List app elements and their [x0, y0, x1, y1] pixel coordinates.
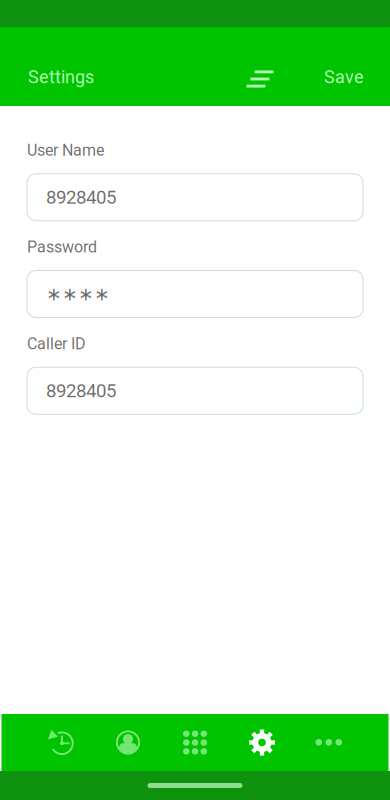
button[interactable]: 8928405 — [27, 367, 363, 414]
staticText: 8928405 — [46, 186, 116, 208]
button[interactable]: Sort — [237, 65, 283, 89]
staticText: Save — [324, 66, 364, 88]
staticText: ∗∗∗∗ — [46, 283, 110, 305]
staticText: Password — [27, 238, 97, 257]
staticText: Settings — [28, 66, 94, 88]
button[interactable]: Keypad — [161, 714, 228, 771]
button[interactable]: Contacts — [94, 714, 161, 771]
button[interactable]: ∗∗∗∗ — [27, 270, 363, 317]
button[interactable]: Settings — [228, 714, 295, 771]
staticText: 8928405 — [46, 380, 116, 402]
staticText: User Name — [27, 141, 104, 160]
staticText: Caller ID — [27, 334, 86, 353]
button[interactable]: Save — [324, 65, 364, 89]
button[interactable]: Recents — [27, 714, 94, 771]
button[interactable]: More — [295, 714, 362, 771]
button[interactable]: 8928405 — [27, 174, 363, 221]
